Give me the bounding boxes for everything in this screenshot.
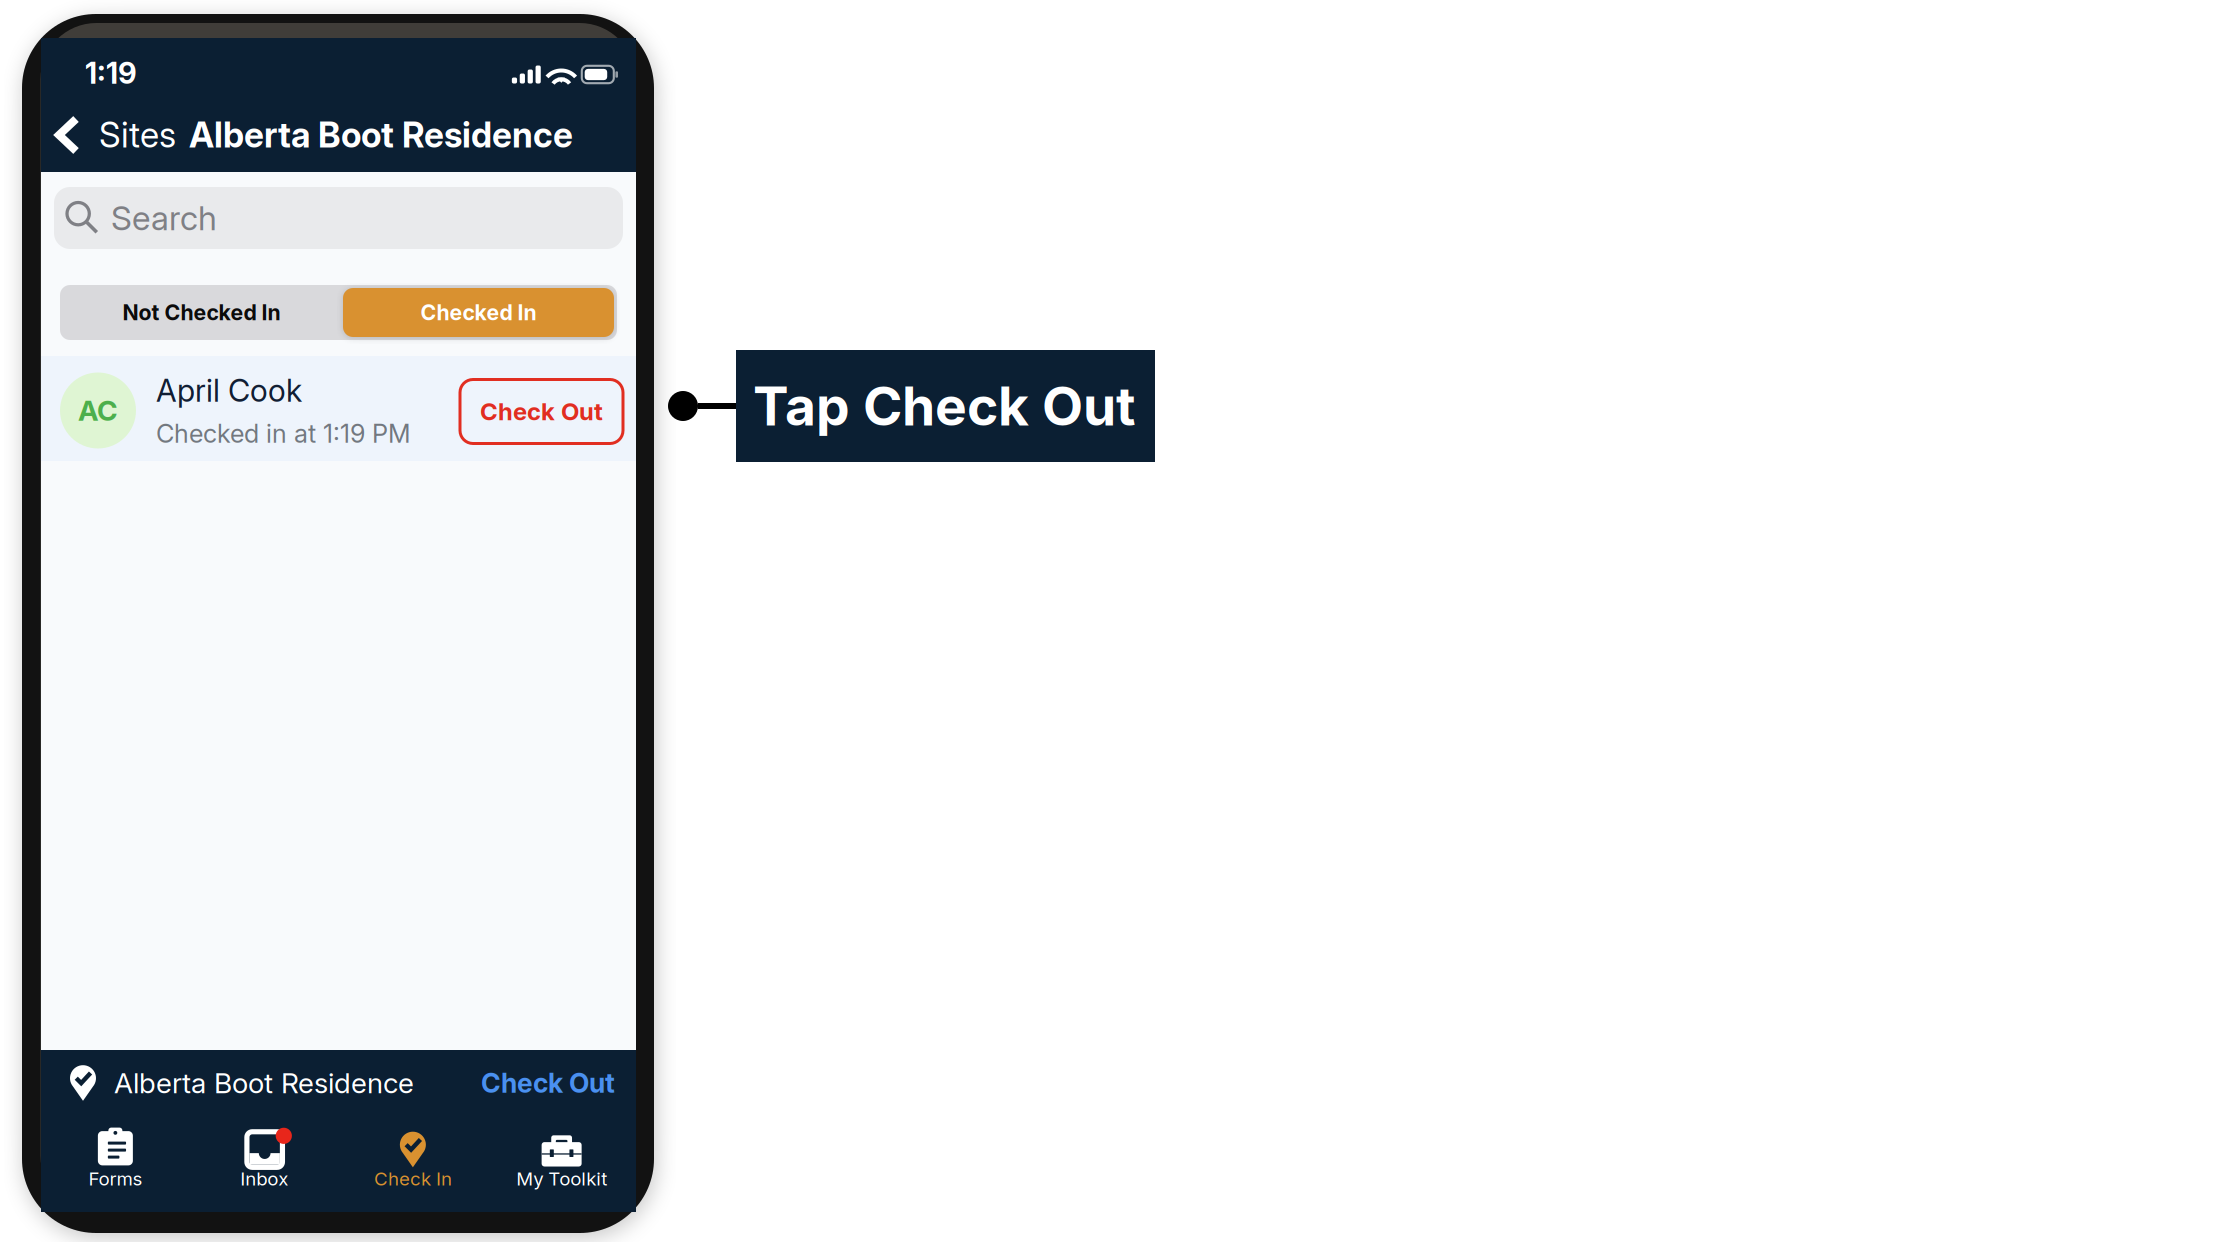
staticText: Check In [374,1167,452,1190]
staticText: Checked In [420,300,536,325]
button[interactable]: AC [41,356,636,461]
staticText: Sites [99,114,176,156]
staticText: My Toolkit [516,1167,607,1190]
button[interactable]: Check Out [481,1067,615,1099]
staticText: Alberta Boot Residence [189,114,573,156]
staticText: Not Checked In [122,300,280,325]
staticText: Check Out [480,397,603,426]
staticText: Alberta Boot Residence [114,1066,414,1100]
staticText: Checked in at 1:19 PM [156,418,411,449]
button[interactable]: My Toolkit [487,1125,636,1190]
staticText: Search [111,198,217,238]
staticText: 1:19 [85,55,137,91]
staticText: AC [78,394,118,427]
button[interactable]: Inbox [190,1125,339,1190]
staticText: Inbox [240,1167,288,1190]
staticText: April Cook [156,372,302,409]
button[interactable]: Check In [338,1125,487,1190]
button[interactable]: Checked In [343,285,617,340]
button[interactable]: Sites [55,108,176,162]
button[interactable]: Not Checked In [60,285,343,340]
button[interactable]: Forms [41,1125,190,1190]
staticText: Tap Check Out [753,374,1136,438]
staticText: Forms [88,1167,142,1190]
staticText: Check Out [481,1067,615,1099]
